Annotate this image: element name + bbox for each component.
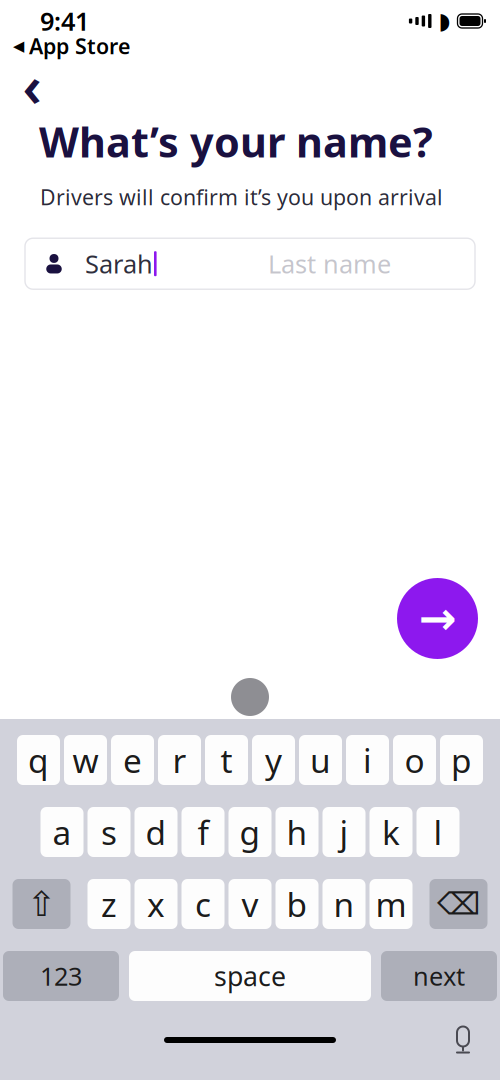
- button[interactable]: Dictation: [452, 1022, 474, 1058]
- staticText: Drivers will confirm it’s you upon arriv…: [40, 183, 443, 211]
- staticText: v: [241, 882, 258, 926]
- button[interactable]: s: [87, 807, 130, 857]
- staticText: b: [286, 882, 307, 926]
- staticText: ◀: [13, 38, 24, 54]
- button[interactable]: Delete: [429, 879, 487, 929]
- staticText: j: [339, 810, 348, 854]
- button[interactable]: ◀: [13, 32, 130, 60]
- button[interactable]: Next: [381, 951, 497, 1001]
- button[interactable]: p: [440, 735, 483, 785]
- staticText: k: [382, 810, 400, 854]
- staticText: Last name: [268, 247, 391, 280]
- staticText: Sarah: [85, 247, 153, 280]
- staticText: o: [404, 738, 424, 782]
- staticText: u: [310, 738, 331, 782]
- button[interactable]: Shift: [12, 879, 70, 929]
- button[interactable]: x: [134, 879, 177, 929]
- staticText: ‹: [22, 48, 41, 122]
- button[interactable]: y: [252, 735, 295, 785]
- button[interactable]: u: [299, 735, 342, 785]
- button[interactable]: o: [393, 735, 436, 785]
- staticText: ⌫: [437, 887, 480, 921]
- button[interactable]: d: [134, 807, 177, 857]
- staticText: ⇧: [27, 884, 56, 924]
- button[interactable]: g: [228, 807, 271, 857]
- staticText: f: [197, 810, 208, 854]
- staticText: r: [172, 738, 186, 782]
- staticText: h: [286, 810, 307, 854]
- button[interactable]: Space: [129, 951, 371, 1001]
- button[interactable]: a: [40, 807, 83, 857]
- staticText: next: [413, 959, 465, 993]
- staticText: p: [451, 738, 472, 782]
- staticText: a: [52, 810, 71, 854]
- staticText: →: [418, 593, 456, 644]
- button[interactable]: h: [275, 807, 318, 857]
- staticText: App Store: [29, 32, 130, 60]
- staticText: 123: [40, 959, 82, 993]
- staticText: s: [101, 810, 117, 854]
- staticText: g: [239, 810, 260, 854]
- staticText: y: [265, 738, 282, 782]
- button[interactable]: Sarah: [25, 238, 475, 289]
- button[interactable]: j: [322, 807, 365, 857]
- staticText: w: [72, 738, 98, 782]
- button[interactable]: v: [228, 879, 271, 929]
- staticText: e: [123, 738, 142, 782]
- button[interactable]: k: [369, 807, 412, 857]
- staticText: 9:41: [40, 4, 89, 38]
- staticText: x: [147, 882, 165, 926]
- button[interactable]: c: [181, 879, 224, 929]
- button[interactable]: w: [64, 735, 107, 785]
- staticText: z: [101, 882, 117, 926]
- staticText: n: [333, 882, 354, 926]
- button[interactable]: f: [181, 807, 224, 857]
- staticText: ◗: [438, 8, 450, 34]
- button[interactable]: Numbers: [3, 951, 119, 1001]
- staticText: q: [28, 738, 49, 782]
- staticText: What’s your name?: [39, 114, 433, 169]
- button[interactable]: m: [369, 879, 412, 929]
- button[interactable]: i: [346, 735, 389, 785]
- staticText: i: [363, 738, 372, 782]
- button[interactable]: q: [17, 735, 60, 785]
- staticText: l: [433, 810, 442, 854]
- button[interactable]: t: [205, 735, 248, 785]
- button[interactable]: l: [416, 807, 459, 857]
- staticText: c: [195, 882, 211, 926]
- button[interactable]: n: [322, 879, 365, 929]
- staticText: t: [220, 738, 232, 782]
- button[interactable]: z: [87, 879, 130, 929]
- staticText: d: [145, 810, 166, 854]
- button[interactable]: b: [275, 879, 318, 929]
- staticText: space: [214, 958, 286, 994]
- button[interactable]: Back: [0, 66, 60, 104]
- staticText: m: [375, 882, 406, 926]
- button[interactable]: e: [111, 735, 154, 785]
- button[interactable]: Continue: [397, 578, 478, 659]
- button[interactable]: r: [158, 735, 201, 785]
